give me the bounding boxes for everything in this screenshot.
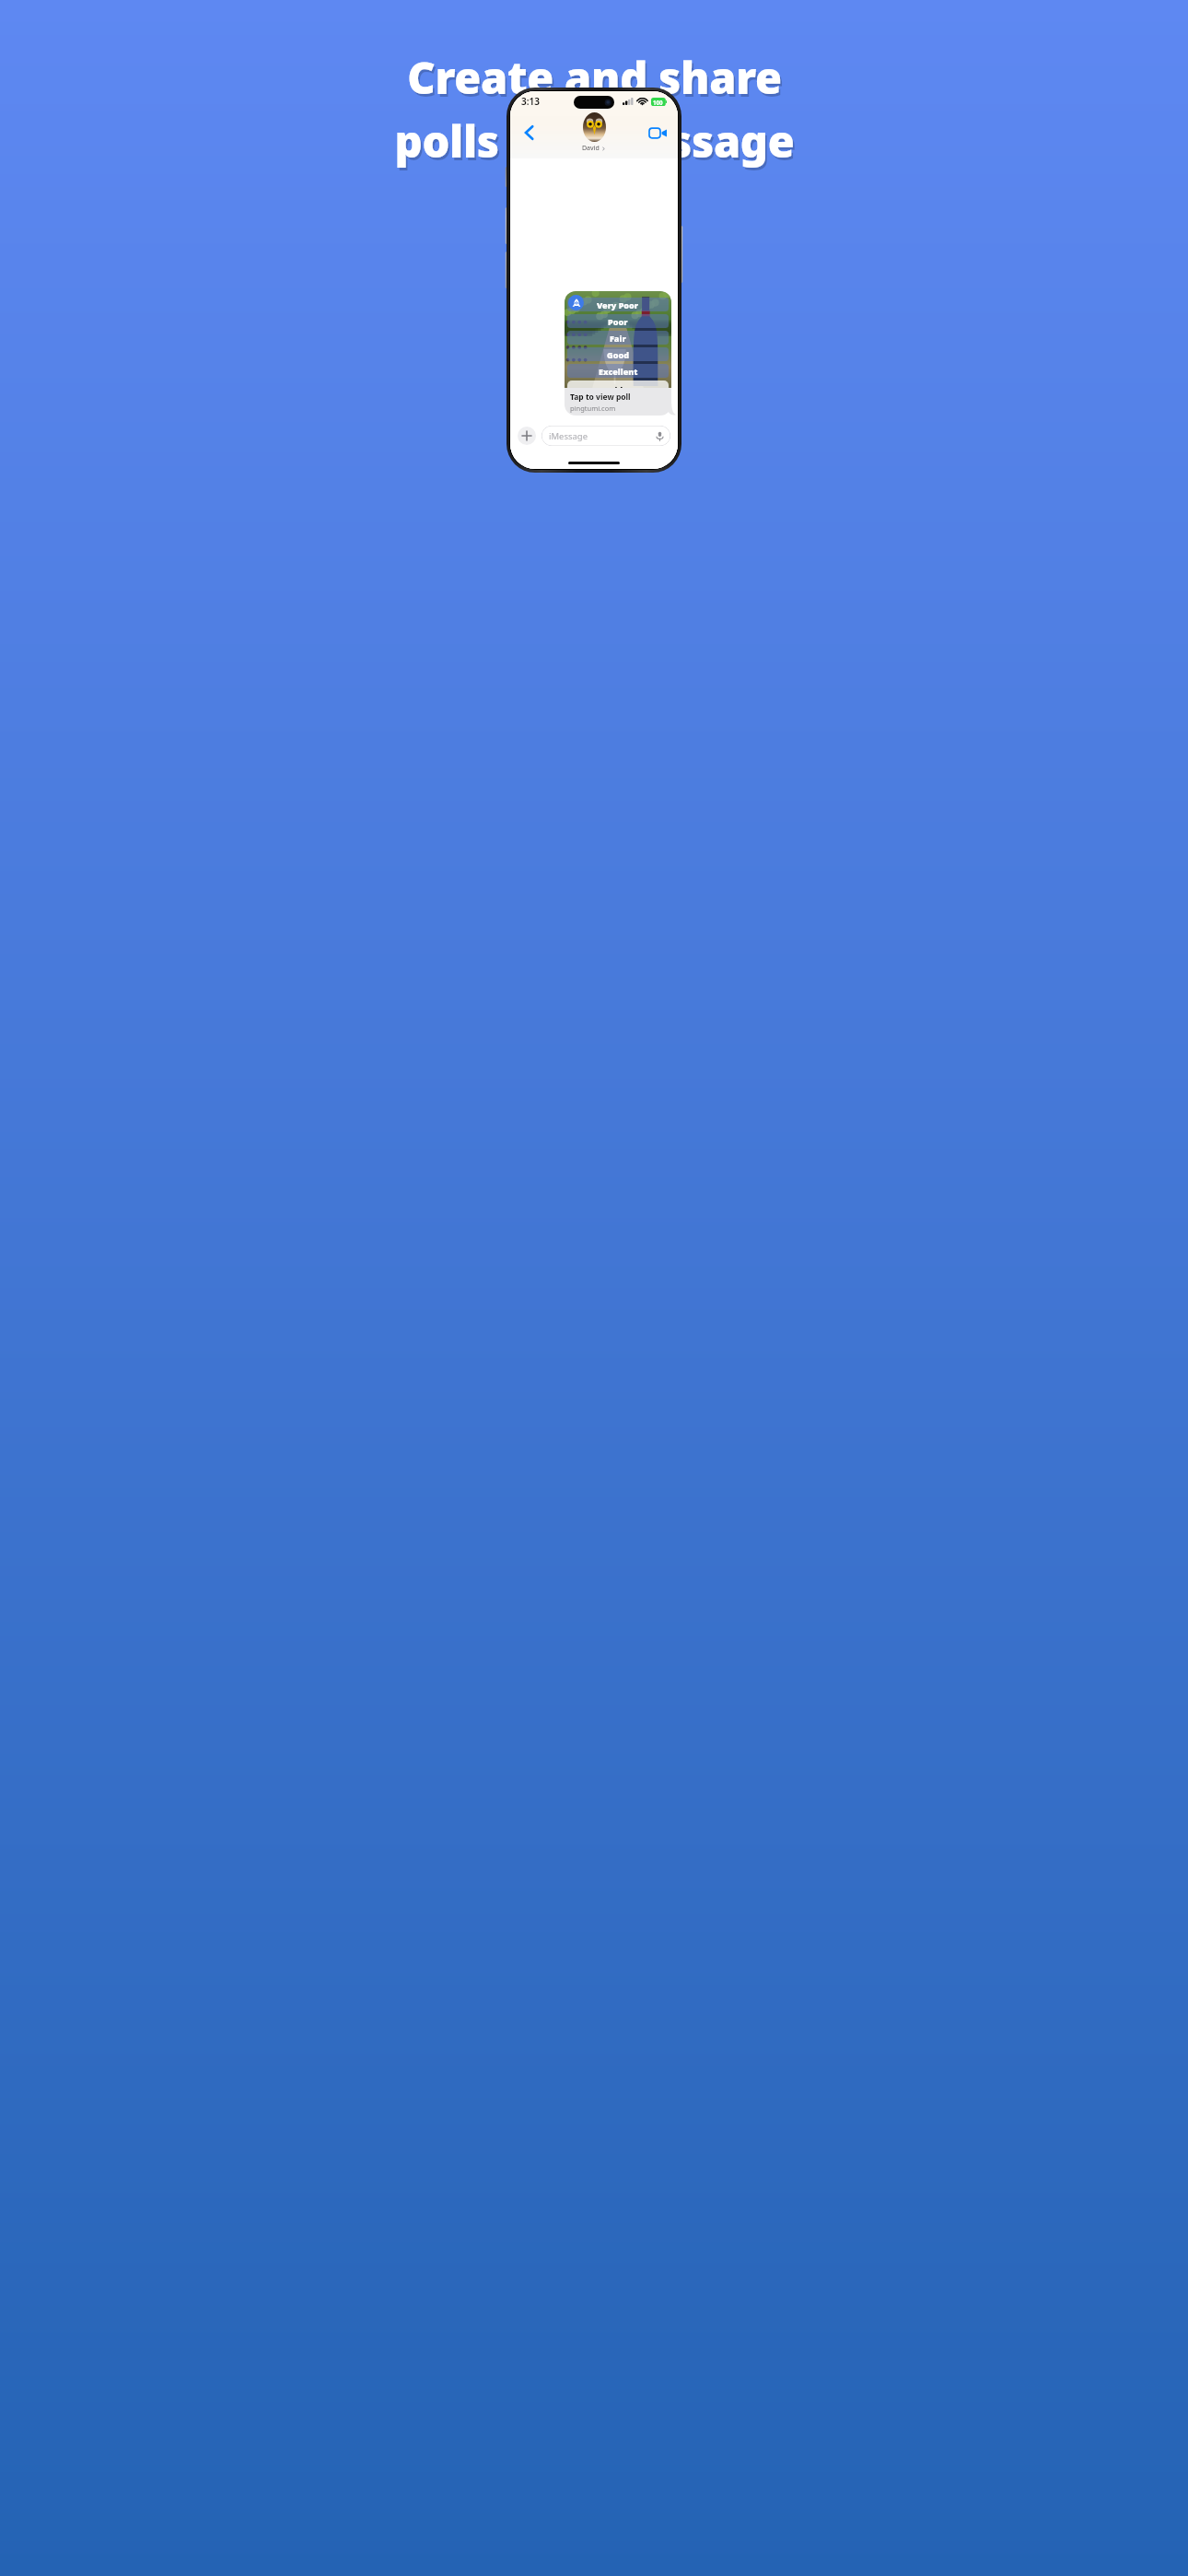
button[interactable]: Good <box>567 347 669 361</box>
staticText: 100 <box>653 99 663 106</box>
button[interactable]: Pingtumi app <box>568 295 584 310</box>
staticText: Fair <box>610 333 626 344</box>
staticText: pingtumi.com <box>570 404 616 413</box>
button[interactable]: Back <box>516 119 543 146</box>
button[interactable]: FaceTime video call <box>645 120 670 146</box>
staticText: How would you rate the wines we tasted t… <box>570 384 666 388</box>
button[interactable]: Very Poor <box>567 298 669 311</box>
staticText: David <box>582 144 600 153</box>
staticText: Tap to view poll <box>570 392 631 403</box>
button[interactable]: iMessage <box>542 426 670 446</box>
staticText: polls via iMessage <box>394 111 795 170</box>
button[interactable]: Excellent <box>567 364 669 378</box>
button[interactable]: Record audio message <box>654 430 666 442</box>
button[interactable]: Fair <box>567 331 669 345</box>
staticText: Create and share <box>409 51 784 110</box>
staticText: polls via iMessage <box>396 114 797 173</box>
button[interactable]: Poor <box>567 314 669 328</box>
staticText: iMessage <box>549 430 588 442</box>
staticText: Poor <box>608 316 628 327</box>
button[interactable]: David <box>582 112 606 153</box>
staticText: Create and share <box>407 48 782 107</box>
staticText: Very Poor <box>597 299 639 310</box>
staticText: Good <box>607 349 629 360</box>
staticText: 3:13 <box>521 95 540 108</box>
button[interactable]: Add attachment <box>518 427 536 445</box>
button[interactable]: Very Poor <box>565 291 671 416</box>
staticText: Excellent <box>599 366 638 377</box>
